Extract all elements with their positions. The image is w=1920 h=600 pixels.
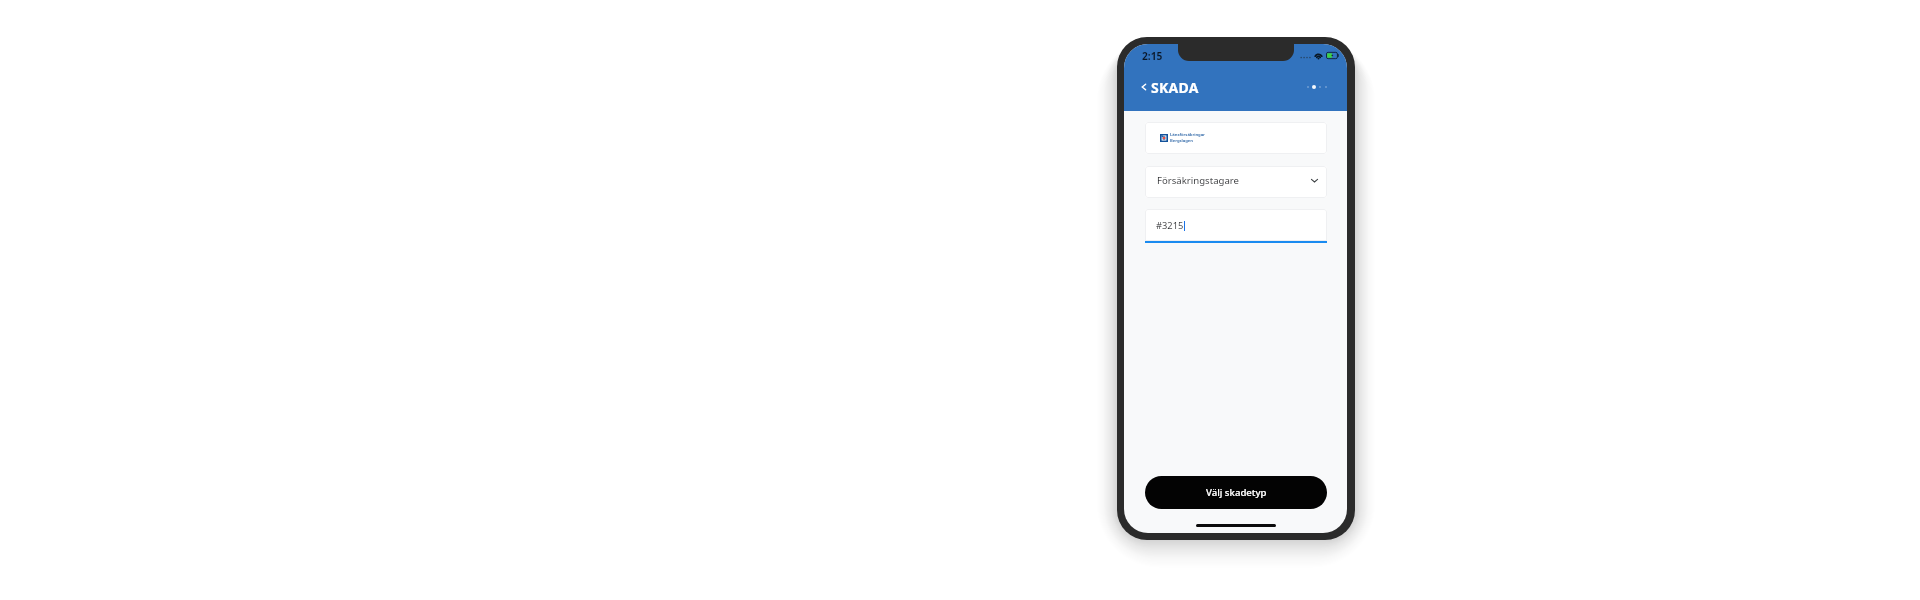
staticText: 2:15 xyxy=(1142,49,1163,63)
staticText: Försäkringstagare xyxy=(1157,174,1240,187)
staticText: SKADA xyxy=(1151,78,1199,96)
staticText: #3215 xyxy=(1156,219,1184,232)
staticText: Välj skadetyp xyxy=(1206,486,1267,499)
button[interactable]: Försäkringstagare xyxy=(1145,166,1327,198)
button[interactable]: Välj skadetyp xyxy=(1145,476,1327,509)
button[interactable]: #3215 xyxy=(1145,209,1327,241)
button[interactable]: Länsförsäkringar xyxy=(1145,122,1327,154)
staticText: Bergslagen xyxy=(1170,138,1193,144)
staticText: Länsförsäkringar xyxy=(1170,132,1205,138)
button[interactable]: Back xyxy=(1139,82,1149,92)
